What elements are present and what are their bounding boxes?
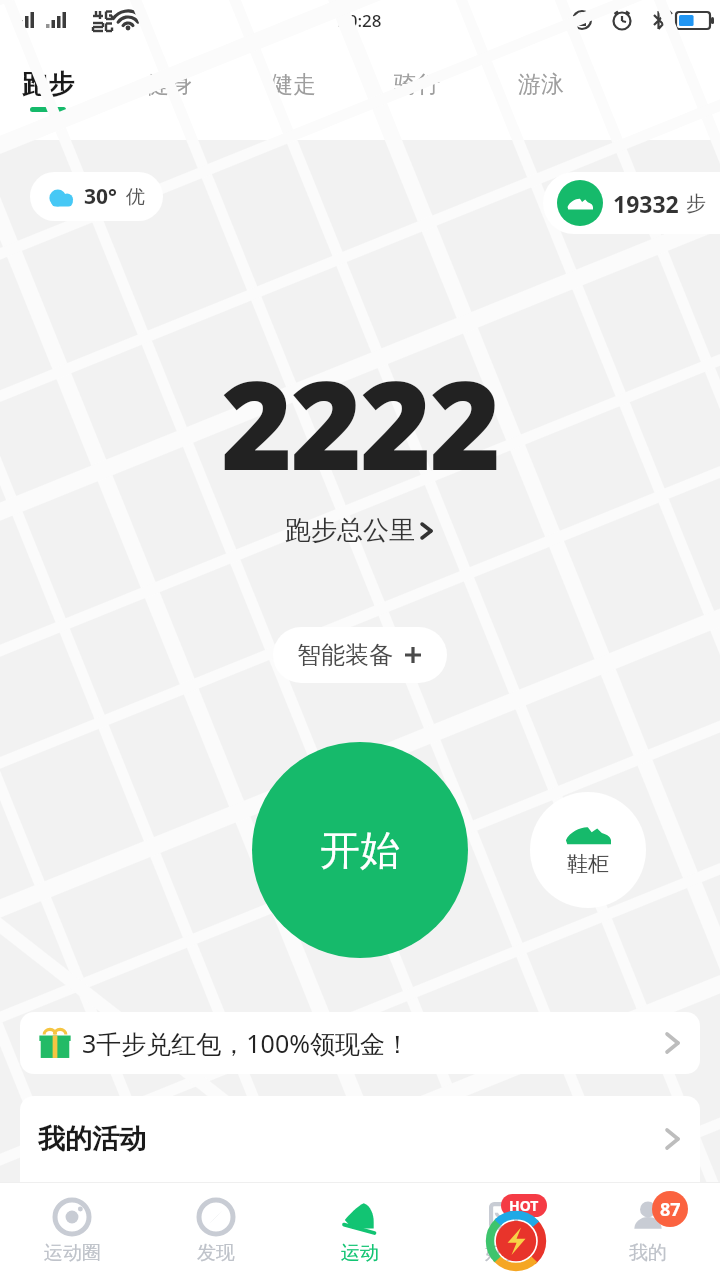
staticText: 好友 <box>485 1241 523 1265</box>
button[interactable]: 健走 <box>270 40 394 140</box>
button[interactable]: 3千步兑红包，100%领现金！ <box>20 1012 700 1074</box>
staticText: 开始 <box>320 825 400 875</box>
button[interactable]: 发现 <box>144 1182 288 1280</box>
staticText: 87 <box>660 1197 681 1222</box>
staticText: 19332 <box>613 188 679 219</box>
staticText: 20:28 <box>338 9 382 32</box>
staticText: 健身 <box>146 70 192 99</box>
staticText: 步 <box>686 191 706 216</box>
staticText: 我的 <box>629 1241 667 1265</box>
button[interactable]: 骑行 <box>394 40 518 140</box>
button[interactable]: 我的 <box>576 1182 720 1280</box>
staticText: 30° <box>84 182 117 211</box>
staticText: 骑行 <box>394 70 440 99</box>
staticText: 运动 <box>341 1241 379 1265</box>
button[interactable]: 我的活动 <box>20 1096 700 1182</box>
staticText: 2222 <box>221 340 499 506</box>
staticText: 跑步总公里 <box>285 514 415 547</box>
staticText: 优 <box>126 185 145 209</box>
button[interactable]: 运动圈 <box>0 1182 144 1280</box>
staticText: 智能装备 <box>297 640 393 670</box>
button[interactable]: 鞋柜 <box>530 792 646 908</box>
button[interactable]: 健身 <box>146 40 270 140</box>
staticText: 游泳 <box>518 70 564 99</box>
button[interactable]: 30° <box>30 172 163 221</box>
button[interactable]: 好友 <box>432 1182 576 1280</box>
staticText: 3千步兑红包，100%领现金！ <box>82 1026 410 1060</box>
button[interactable]: 开始 <box>252 742 468 958</box>
staticText: HOT <box>509 1196 539 1215</box>
button[interactable]: 运动 <box>288 1182 432 1280</box>
staticText: 健走 <box>270 70 316 99</box>
staticText: 我的活动 <box>38 1122 146 1156</box>
button[interactable]: 游泳 <box>518 40 642 140</box>
button[interactable]: 跑步 <box>22 40 146 140</box>
staticText: 运动圈 <box>44 1241 101 1265</box>
button[interactable]: 19332 <box>543 172 720 234</box>
staticText: 跑步 <box>22 68 74 101</box>
button[interactable]: 跑步总公里 <box>285 514 435 547</box>
staticText: 鞋柜 <box>567 851 609 877</box>
staticText: 发现 <box>197 1241 235 1265</box>
button[interactable]: 智能装备 <box>273 627 447 683</box>
